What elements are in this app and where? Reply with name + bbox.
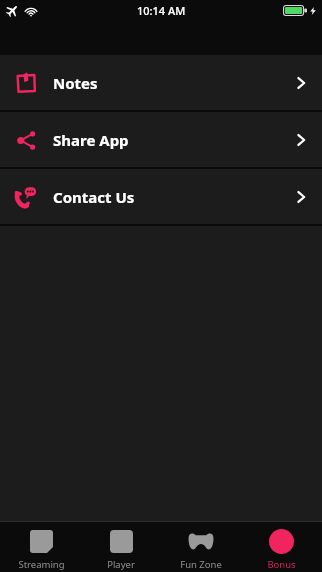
button[interactable]: Notes [0, 55, 322, 110]
button[interactable]: Player [82, 522, 160, 572]
button[interactable]: Fun Zone [162, 522, 240, 572]
staticText: Player [107, 558, 135, 571]
staticText: Bonus [267, 558, 296, 571]
staticText: 10:14 AM [137, 3, 186, 18]
button[interactable]: Share App [0, 112, 322, 167]
staticText: Fun Zone [180, 558, 222, 571]
button[interactable]: Bonus [242, 522, 320, 572]
staticText: Streaming [18, 558, 65, 571]
staticText: Share App [53, 130, 129, 150]
button[interactable]: Contact Us [0, 169, 322, 224]
staticText: Notes [53, 73, 98, 93]
button[interactable]: Streaming [2, 522, 80, 572]
staticText: Contact Us [53, 187, 135, 207]
